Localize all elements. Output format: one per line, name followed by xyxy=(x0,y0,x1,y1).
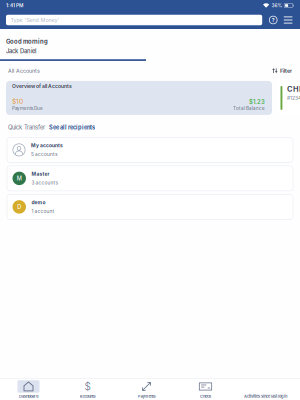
staticText: $10 xyxy=(12,97,23,105)
button[interactable]: Dashboard xyxy=(17,380,39,399)
staticText: Master xyxy=(31,171,49,177)
staticText: All Accounts xyxy=(8,67,40,74)
staticText: Check xyxy=(200,394,211,399)
staticText: Jack Daniel xyxy=(6,48,36,55)
staticText: Quick Transfer xyxy=(8,124,45,131)
button[interactable]: D xyxy=(7,194,293,219)
button[interactable]: M xyxy=(7,166,293,191)
staticText: See all recipients xyxy=(49,124,95,131)
staticText: Total Balance xyxy=(233,106,265,111)
staticText: D xyxy=(17,203,21,210)
staticText: Payments xyxy=(137,394,155,399)
staticText: Dashboard xyxy=(19,394,38,399)
button[interactable]: Check xyxy=(194,380,216,399)
button[interactable]: Filter xyxy=(272,67,292,74)
button[interactable]: Menu xyxy=(282,15,294,25)
staticText: Payments Due xyxy=(12,106,43,111)
staticText: 3 accounts xyxy=(31,180,58,186)
staticText: Overview of all Accounts xyxy=(12,83,72,89)
button[interactable]: See all recipients xyxy=(49,124,95,131)
staticText: My accounts xyxy=(31,142,63,148)
button[interactable]: My accounts xyxy=(7,137,293,162)
button[interactable]: Payments xyxy=(135,380,157,399)
staticText: #1234 xyxy=(287,95,300,101)
button[interactable]: Activities since last login xyxy=(244,380,287,399)
staticText: 1 account xyxy=(31,208,54,214)
button[interactable]: $ xyxy=(76,380,98,399)
staticText: M xyxy=(17,175,22,182)
staticText: ? xyxy=(272,17,275,23)
staticText: 36% xyxy=(271,3,282,8)
staticText: Accounts xyxy=(79,394,95,399)
staticText: $ xyxy=(84,380,90,393)
staticText: 5 accounts xyxy=(31,151,58,157)
staticText: Filter xyxy=(280,67,292,74)
staticText: 1:41 PM xyxy=(6,3,23,8)
staticText: demo xyxy=(31,199,45,205)
button[interactable]: Help xyxy=(268,14,279,25)
staticText: Good morning xyxy=(6,38,48,45)
staticText: Type 'Send Money' xyxy=(10,17,59,23)
staticText: Activities since last login xyxy=(244,394,287,399)
button[interactable]: Type 'Send Money' xyxy=(6,15,262,25)
staticText: CHE xyxy=(287,84,300,93)
staticText: $1.23 xyxy=(249,98,265,105)
